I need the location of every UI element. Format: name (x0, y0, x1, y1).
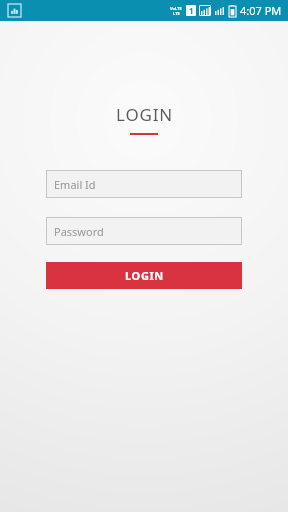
other: Signal strength (199, 5, 211, 16)
staticText: 1 (189, 5, 194, 16)
other: VoLTE (170, 6, 182, 16)
other: SIM 1 (186, 5, 196, 16)
staticText: LTE (173, 11, 180, 16)
staticText: VoLTE (170, 6, 182, 11)
staticText: Email Id (54, 177, 96, 192)
button[interactable]: LOGIN (46, 262, 242, 289)
button[interactable]: Email Id (46, 170, 242, 198)
staticText: LOGIN (116, 103, 173, 126)
other: Battery (229, 5, 236, 17)
other: Signal strength (213, 5, 225, 16)
other: Screenshot saved (8, 4, 21, 17)
staticText: 4:07 PM (240, 3, 282, 18)
staticText: Password (54, 224, 104, 239)
button[interactable]: Password (46, 217, 242, 245)
staticText: LOGIN (125, 268, 164, 283)
